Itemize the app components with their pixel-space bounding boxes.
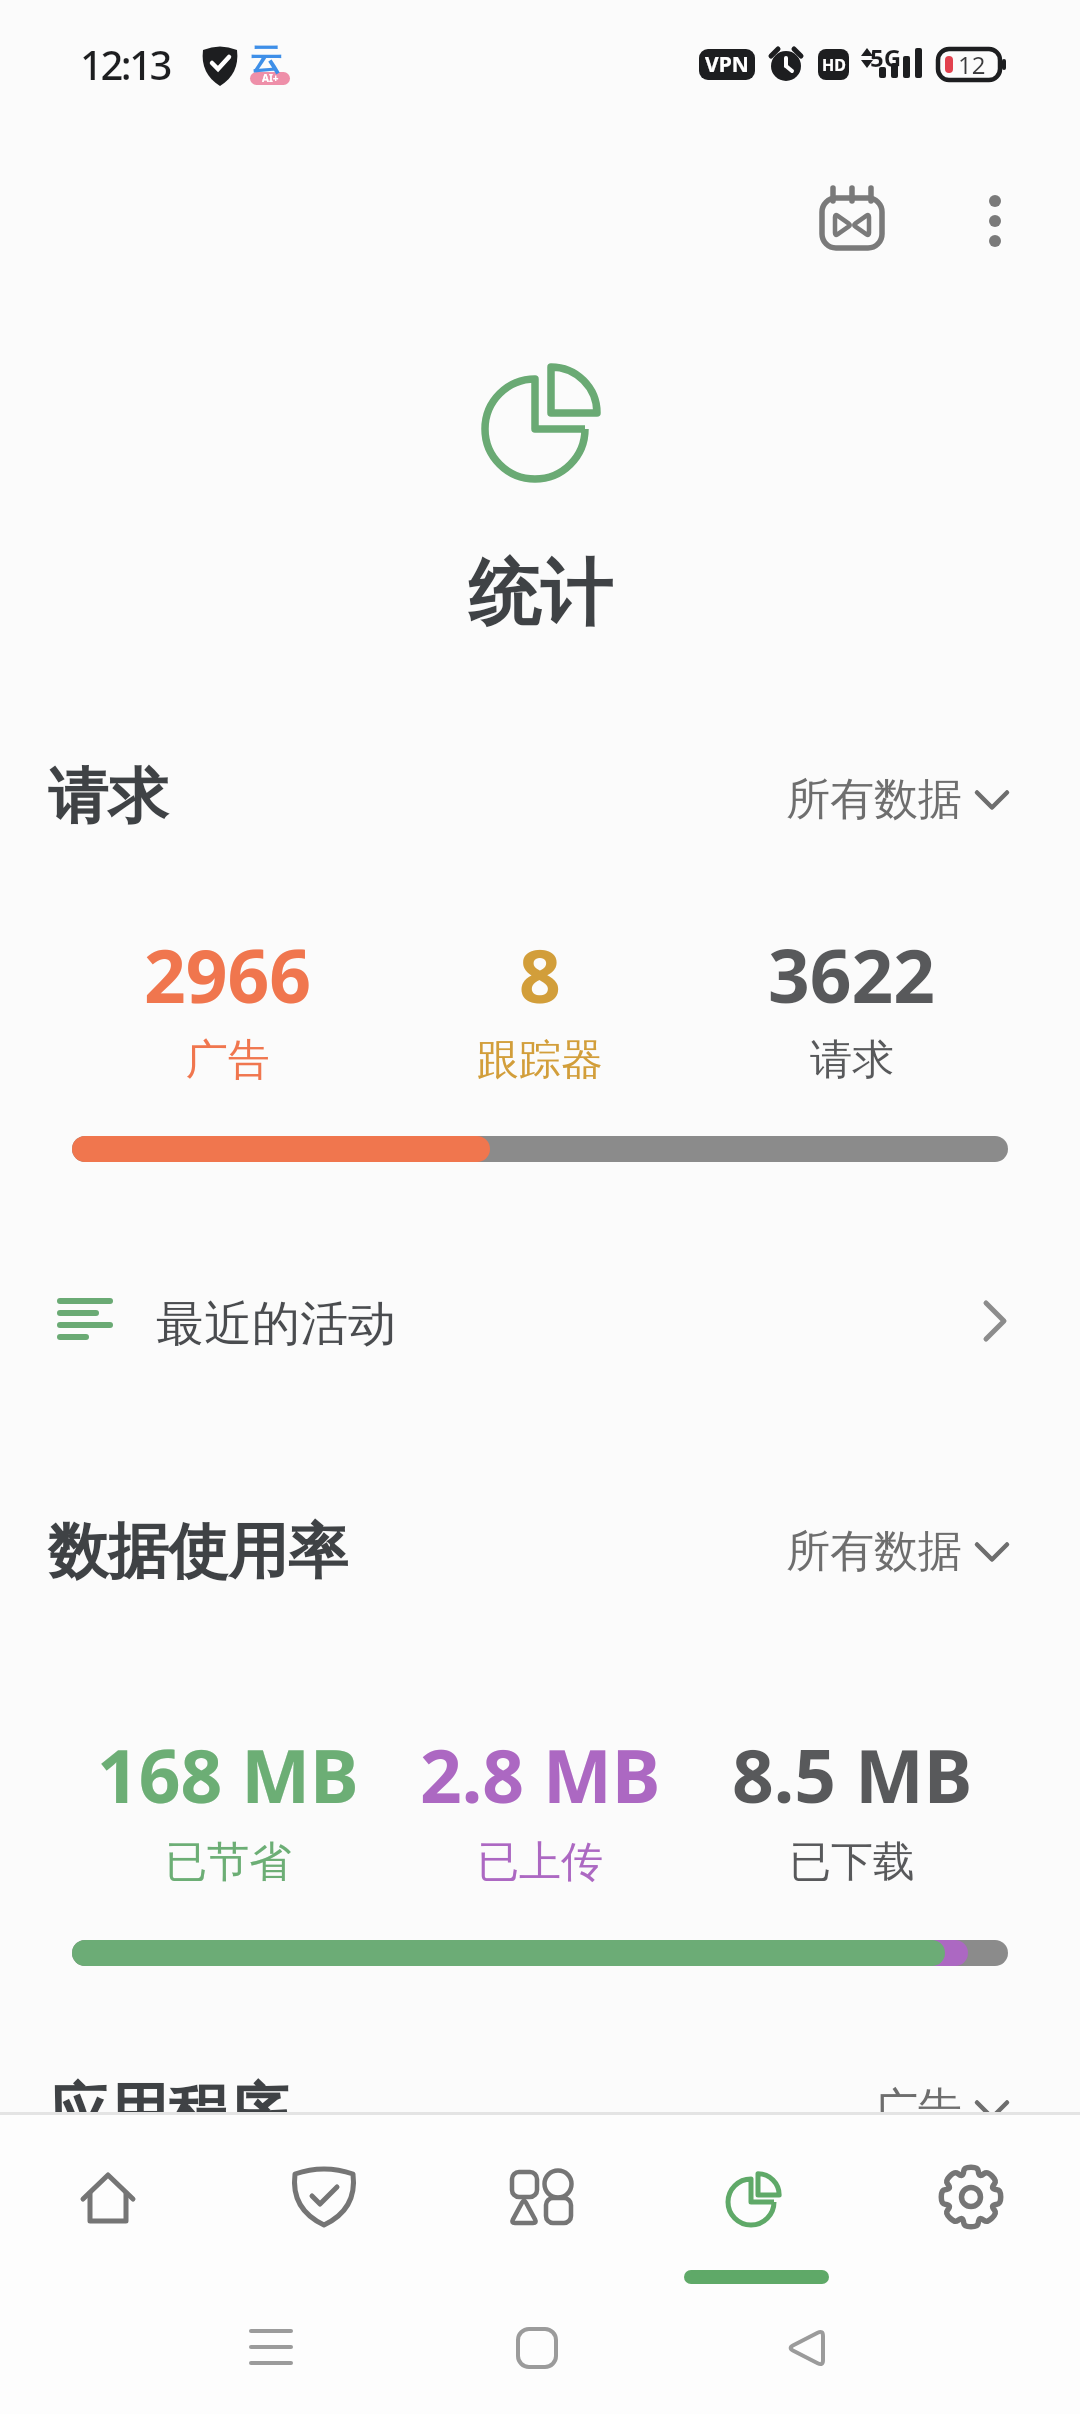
staticText: 8 xyxy=(519,925,561,1024)
staticText: 跟踪器 xyxy=(477,1034,603,1087)
button[interactable] xyxy=(770,765,1020,835)
staticText: 最近的活动 xyxy=(156,1294,396,1354)
staticText: 云 xyxy=(250,39,282,79)
staticText: 2966 xyxy=(144,925,312,1024)
button[interactable] xyxy=(0,2130,216,2270)
staticText: 数据使用率 xyxy=(48,1514,348,1590)
staticText: 12 xyxy=(958,48,986,81)
staticText: HD xyxy=(822,54,846,76)
staticText: 请求 xyxy=(810,1034,894,1087)
staticText: 广告 xyxy=(186,1034,270,1087)
staticText: VPN xyxy=(705,50,749,79)
staticText: 已下载 xyxy=(789,1836,915,1889)
staticText: 2.8 MB xyxy=(420,1725,661,1824)
staticText: 应用程序 xyxy=(48,2074,288,2150)
staticText: AI+ xyxy=(262,71,279,85)
staticText: 12:13 xyxy=(80,37,170,91)
staticText: 广告 xyxy=(874,2082,962,2137)
staticText: 3622 xyxy=(768,925,936,1024)
button[interactable] xyxy=(770,1518,1020,1588)
button[interactable] xyxy=(231,2310,311,2386)
staticText: 5G xyxy=(870,41,902,74)
staticText: 168 MB xyxy=(97,1725,359,1824)
button[interactable] xyxy=(432,2130,648,2270)
staticText: 已上传 xyxy=(477,1836,603,1889)
button[interactable] xyxy=(806,182,898,262)
staticText: 所有数据 xyxy=(786,1524,962,1579)
button[interactable] xyxy=(648,2130,864,2270)
button[interactable] xyxy=(40,1280,1040,1365)
button[interactable] xyxy=(497,2310,577,2386)
button[interactable] xyxy=(864,2130,1080,2270)
staticText: 8.5 MB xyxy=(732,1725,973,1824)
button[interactable] xyxy=(960,182,1030,262)
staticText: 统计 xyxy=(468,549,612,640)
staticText: 所有数据 xyxy=(786,772,962,827)
button[interactable] xyxy=(765,2310,845,2386)
staticText: 已节省 xyxy=(165,1836,291,1889)
staticText: 请求 xyxy=(48,759,168,835)
button[interactable] xyxy=(216,2130,432,2270)
